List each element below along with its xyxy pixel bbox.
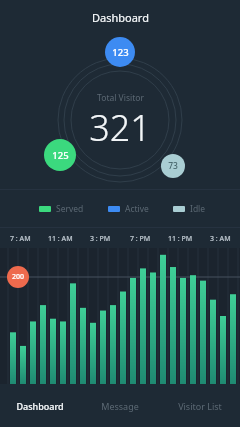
button[interactable]: Message: [80, 384, 160, 427]
staticText: Idle: [190, 203, 206, 215]
button[interactable]: Visitor count 125: [44, 139, 76, 171]
button[interactable]: Visitor List: [160, 384, 240, 427]
button[interactable]: Visitor count 123: [105, 37, 135, 67]
staticText: 3 : AM: [210, 234, 231, 244]
button[interactable]: Served: [38, 203, 85, 215]
staticText: 123: [112, 46, 129, 59]
staticText: Total Visitor: [97, 92, 144, 104]
button[interactable]: Dashboard: [0, 384, 80, 427]
staticText: Message: [101, 400, 139, 412]
button[interactable]: Active: [107, 203, 150, 215]
button[interactable]: Idle: [172, 203, 207, 215]
staticText: 11 : AM: [48, 234, 73, 244]
staticText: 73: [168, 160, 178, 172]
staticText: Dashboard: [92, 10, 149, 25]
staticText: Visitor List: [178, 400, 222, 412]
button[interactable]: Visitor count 73: [161, 154, 185, 178]
staticText: 200: [12, 272, 25, 282]
staticText: 125: [52, 149, 69, 162]
staticText: 321: [89, 103, 151, 149]
staticText: 7 : PM: [130, 234, 151, 244]
staticText: Served: [56, 203, 84, 215]
staticText: Active: [125, 203, 149, 215]
staticText: 11 : PM: [168, 234, 193, 244]
staticText: Dashboard: [16, 400, 64, 412]
staticText: 3 : PM: [90, 234, 111, 244]
staticText: 7 : AM: [10, 234, 31, 244]
